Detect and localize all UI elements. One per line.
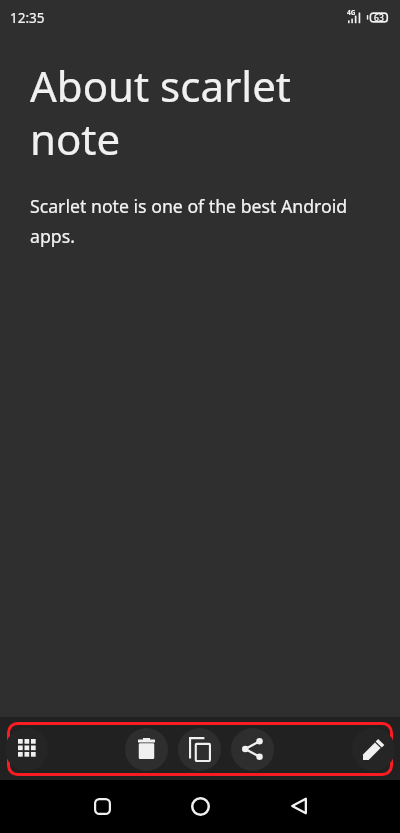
staticText: 63 [374,12,384,24]
button[interactable]: Delete [125,728,168,771]
button[interactable]: Apps [5,728,48,771]
button[interactable]: Back [279,787,317,825]
staticText: 12:35 [10,9,45,27]
button[interactable]: Share [231,728,274,771]
button[interactable]: Copy [178,728,221,771]
staticText: Scarlet note is one of the best Android … [30,194,360,248]
button[interactable]: Edit [352,728,395,771]
staticText: 4G [347,8,356,17]
button[interactable]: Home [181,787,219,825]
button[interactable]: Recents [83,787,121,825]
staticText: About scarlet note [30,57,300,167]
